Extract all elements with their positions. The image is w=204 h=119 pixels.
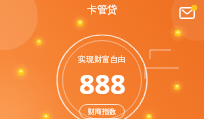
staticText: 卡管贷 (87, 3, 117, 16)
staticText: 888 (79, 65, 126, 102)
button[interactable]: Messages (177, 1, 199, 23)
staticText: 财商指数 (88, 107, 116, 116)
staticText: 实现财富自由 (78, 54, 126, 64)
button[interactable]: 财商指数 (79, 104, 125, 119)
